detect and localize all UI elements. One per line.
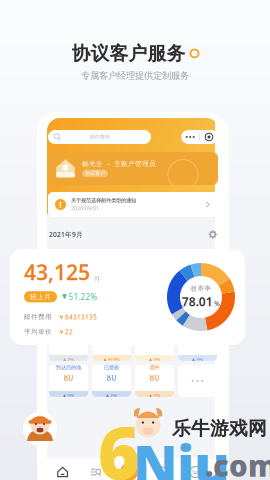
button[interactable]: 已揽收 bbox=[92, 329, 131, 361]
staticText: 29% bbox=[153, 357, 160, 362]
staticText: 邮件查询 bbox=[89, 134, 109, 140]
staticText: ! bbox=[59, 198, 62, 211]
staticText: 6 bbox=[98, 404, 140, 480]
staticText: 99.99% bbox=[107, 357, 119, 362]
staticText: 派件中 bbox=[190, 328, 205, 335]
staticText: % bbox=[214, 299, 220, 308]
staticText: 43,125 bbox=[24, 258, 90, 286]
button[interactable]: ! bbox=[48, 192, 218, 217]
staticText: 29% bbox=[67, 393, 74, 398]
button[interactable]: More metrics bbox=[178, 365, 217, 397]
staticText: 已签收 bbox=[104, 364, 119, 371]
button[interactable]: 运输中 bbox=[135, 329, 174, 361]
button[interactable]: 退件 bbox=[135, 365, 174, 397]
staticText: 29% bbox=[196, 357, 203, 362]
staticText: 29% bbox=[110, 393, 117, 398]
staticText: 杨先生 － 主账户管理员 bbox=[82, 160, 156, 168]
staticText: 80 bbox=[149, 372, 159, 383]
staticText: Niu bbox=[133, 428, 230, 480]
staticText: 51.22% bbox=[68, 291, 97, 302]
staticText: 78.01 bbox=[182, 294, 213, 309]
button[interactable]: More bbox=[181, 130, 199, 144]
staticText: 2021年9月 bbox=[49, 230, 83, 239]
staticText: 件 bbox=[94, 275, 101, 283]
staticText: 协议客户 bbox=[85, 170, 105, 177]
button[interactable]: Orders bbox=[146, 459, 179, 480]
button[interactable]: Query bbox=[79, 459, 112, 480]
staticText: 关于规范选择邮件类型的通知 bbox=[71, 197, 136, 204]
button[interactable]: 到达目的地 bbox=[49, 365, 88, 397]
staticText: 80 bbox=[63, 372, 73, 383]
staticText: 退件 bbox=[149, 364, 159, 371]
button[interactable]: 已签收 bbox=[92, 365, 131, 397]
staticText: 2020/09/01 bbox=[71, 205, 99, 212]
button[interactable]: 已收寄 bbox=[49, 329, 88, 361]
staticText: ￥22 bbox=[58, 327, 73, 336]
staticText: 邮件费用 bbox=[24, 313, 52, 321]
button[interactable]: Home bbox=[46, 459, 79, 480]
staticText: 平均单价 bbox=[24, 328, 52, 336]
staticText: 已收寄 bbox=[61, 328, 76, 335]
button[interactable]: 杨先生 － 主账户管理员 bbox=[48, 152, 218, 185]
button[interactable]: Send mail bbox=[112, 459, 146, 480]
staticText: 较上月 bbox=[30, 293, 51, 301]
staticText: 到达目的地 bbox=[56, 364, 81, 371]
staticText: 29% bbox=[67, 357, 74, 362]
button[interactable]: Settings bbox=[208, 230, 217, 239]
staticText: 专属客户经理提供定制服务 bbox=[81, 70, 189, 81]
staticText: 29% bbox=[153, 393, 160, 398]
button[interactable]: 邮件查询 bbox=[48, 130, 151, 144]
staticText: 协议客户服务 bbox=[71, 42, 185, 65]
staticText: 80 bbox=[106, 372, 116, 383]
button[interactable]: Close mini program bbox=[200, 130, 218, 144]
staticText: 收寄率 bbox=[190, 284, 211, 293]
staticText: ￥64313135 bbox=[58, 312, 97, 321]
staticText: .com bbox=[205, 446, 270, 480]
button[interactable]: Profile bbox=[179, 459, 212, 480]
staticText: 乐牛游戏网 bbox=[172, 417, 267, 440]
button[interactable]: 派件中 bbox=[178, 329, 217, 361]
